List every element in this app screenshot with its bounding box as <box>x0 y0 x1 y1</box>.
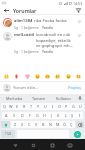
button[interactable]: Like <box>76 32 82 38</box>
staticText: Q <box>3 104 6 109</box>
button[interactable]: V <box>33 121 40 128</box>
button[interactable]: Yanıtla <box>42 49 53 53</box>
button[interactable]: G <box>34 112 41 119</box>
staticText: R <box>23 104 26 109</box>
staticText: Ş <box>71 113 74 118</box>
staticText: Y <box>37 104 40 109</box>
button[interactable]: Voice input <box>76 94 83 102</box>
button[interactable]: Emoji 7 <box>65 73 72 80</box>
button[interactable]: Yanıtla <box>42 25 53 29</box>
button[interactable]: alim1384 <box>0 15 85 29</box>
staticText: Yorumlar <box>13 7 37 14</box>
button[interactable]: P <box>63 103 70 110</box>
staticText: rika Fooka fooka <box>34 18 67 24</box>
staticText: S <box>13 113 16 118</box>
staticText: G <box>36 113 39 118</box>
staticText: 5g <box>14 25 18 29</box>
button[interactable]: W <box>7 103 14 110</box>
button[interactable]: Ğ <box>70 103 77 110</box>
button[interactable]: Y <box>35 103 42 110</box>
staticText: Ğ <box>72 104 75 109</box>
button[interactable]: Recents <box>48 141 56 149</box>
staticText: melLcattil <box>14 32 35 38</box>
staticText: Ü <box>79 104 82 109</box>
button[interactable]: Emoji 6 <box>54 73 61 80</box>
button[interactable]: 1 beğenme <box>21 25 39 29</box>
button[interactable]: B <box>40 121 47 128</box>
staticText: Tamam <box>32 96 46 101</box>
button[interactable]: Send <box>70 129 85 139</box>
button[interactable]: Emoji 3 <box>24 73 31 80</box>
staticText: W <box>9 104 13 109</box>
button[interactable]: O <box>56 103 63 110</box>
staticText: O <box>58 104 61 109</box>
staticText: M <box>56 122 60 127</box>
button[interactable]: Backspace <box>76 121 84 128</box>
button[interactable]: H <box>41 112 48 119</box>
button[interactable]: Q <box>1 103 7 110</box>
button[interactable]: I <box>49 103 56 110</box>
staticText: Merhaba <box>6 96 23 101</box>
button[interactable]: R <box>21 103 28 110</box>
staticText: lonudrooli en cuk kopardiye, etknlik ve … <box>36 32 74 48</box>
staticText: 5g <box>14 49 18 53</box>
staticText: I <box>52 104 54 109</box>
button[interactable]: Tamam <box>26 94 51 102</box>
button[interactable]: Home <box>29 141 37 149</box>
button[interactable]: U <box>42 103 49 110</box>
button[interactable]: E <box>14 103 21 110</box>
staticText: 14:53 <box>73 1 83 6</box>
staticText: X <box>21 122 24 127</box>
button[interactable]: T <box>28 103 35 110</box>
button[interactable]: F <box>26 112 34 119</box>
button[interactable]: C <box>26 121 33 128</box>
staticText: H <box>43 113 46 118</box>
staticText: D <box>21 113 24 118</box>
button[interactable]: Share <box>75 7 82 14</box>
button[interactable]: Back <box>11 141 19 149</box>
button[interactable]: Ü <box>77 103 84 110</box>
staticText: E <box>16 104 19 109</box>
button[interactable]: A <box>2 112 10 119</box>
button[interactable]: X <box>19 121 26 128</box>
staticText: U <box>44 104 47 109</box>
button[interactable]: Kullanıcı <box>51 94 76 102</box>
button[interactable]: Hide keyboard <box>66 141 74 149</box>
button[interactable]: Z <box>11 121 19 128</box>
button[interactable]: M <box>54 121 61 128</box>
button[interactable]: Ş <box>69 112 76 119</box>
button[interactable]: N <box>47 121 54 128</box>
button[interactable]: K <box>55 112 62 119</box>
button[interactable]: S <box>10 112 18 119</box>
staticText: Z <box>14 122 17 127</box>
button[interactable]: Paylaş <box>68 85 82 91</box>
staticText: Kullanıcı <box>56 96 71 101</box>
button[interactable]: J <box>48 112 55 119</box>
staticText: A <box>5 113 8 118</box>
button[interactable]: Emoji 4 <box>34 73 41 80</box>
button[interactable]: L <box>62 112 69 119</box>
button[interactable]: Yorum ekle... <box>13 85 66 91</box>
button[interactable]: Ç <box>68 121 75 128</box>
button[interactable]: Back <box>3 7 10 14</box>
button[interactable]: Emoji 1 <box>3 73 10 80</box>
button[interactable]: Shift <box>1 121 10 128</box>
button[interactable]: melLcattil <box>0 29 85 53</box>
staticText: K <box>57 113 60 118</box>
staticText: B <box>42 122 45 127</box>
button[interactable]: İ <box>76 112 83 119</box>
staticText: J <box>51 113 53 118</box>
button[interactable]: Like <box>76 18 82 24</box>
button[interactable]: Emoji 5 <box>44 73 51 80</box>
button[interactable]: 1 beğenme <box>21 49 39 53</box>
button[interactable]: Emoji 2 <box>13 73 20 80</box>
button[interactable]: D <box>18 112 26 119</box>
staticText: İ <box>79 113 81 118</box>
staticText: T <box>30 104 33 109</box>
button[interactable]: Ö <box>61 121 68 128</box>
button[interactable]: ?123 <box>1 130 15 138</box>
button[interactable]: Merhaba <box>2 94 26 102</box>
staticText: V <box>35 122 38 127</box>
button[interactable]: Emoji 8 <box>75 73 82 80</box>
